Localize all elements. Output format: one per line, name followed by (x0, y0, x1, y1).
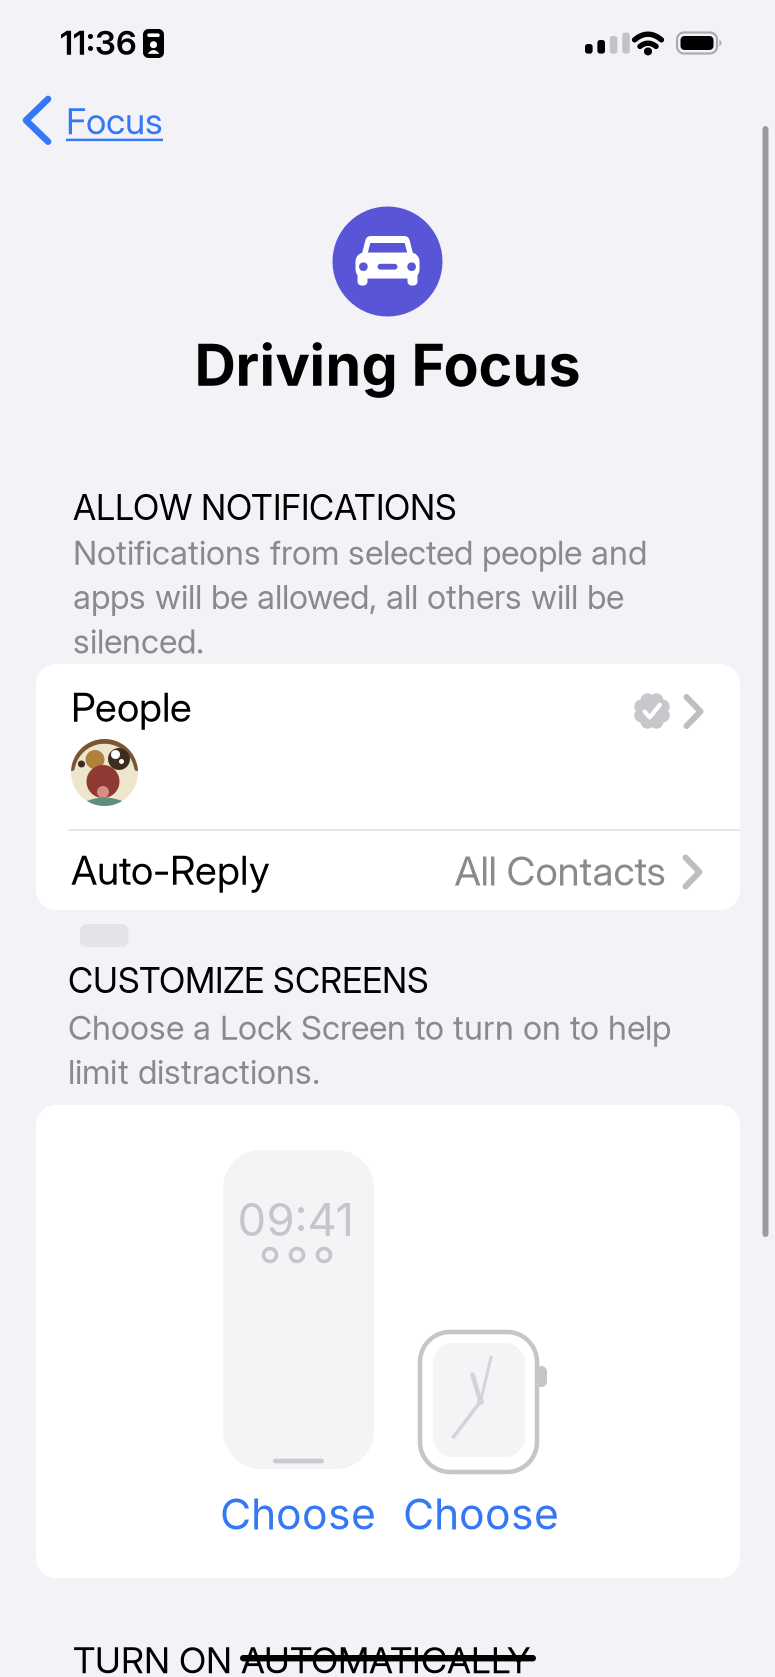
staticText: Choose a Lock Screen to turn on to help … (68, 1008, 671, 1092)
staticText: Notifications from selected people and a… (73, 533, 647, 661)
staticText: 09:41 (237, 1193, 353, 1246)
staticText: CUSTOMIZE SCREENS (68, 960, 429, 1001)
staticText: Focus (66, 100, 163, 142)
staticText: Driving Focus (194, 331, 580, 399)
staticText: 11:36 (60, 23, 137, 62)
staticText: Choose (220, 1489, 376, 1539)
button[interactable]: Choose (386, 1486, 576, 1542)
button[interactable]: Choose (203, 1486, 393, 1542)
button[interactable]: People (36, 664, 740, 829)
staticText: People (71, 683, 192, 731)
staticText: TURN ON AUTOMATICALLY (73, 1639, 531, 1677)
staticText: Choose (403, 1489, 559, 1539)
button[interactable]: Auto-Reply (36, 829, 740, 910)
staticText: All Contacts (454, 847, 665, 895)
staticText: ALLOW NOTIFICATIONS (73, 487, 457, 528)
button[interactable]: Focus (10, 83, 195, 159)
staticText: Auto-Reply (71, 846, 270, 894)
